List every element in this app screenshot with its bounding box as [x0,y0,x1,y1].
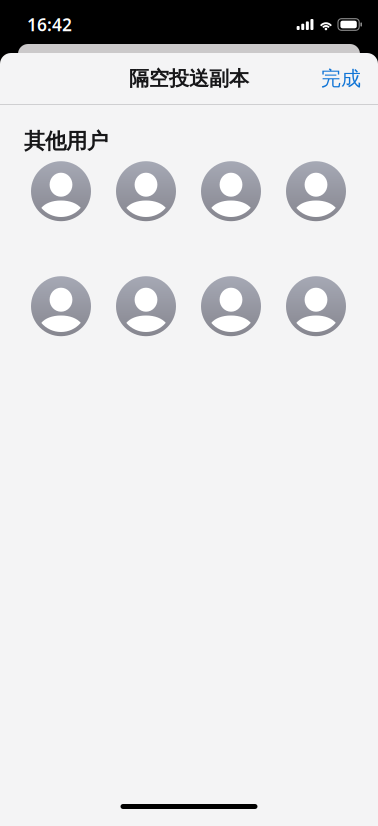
staticText: 隔空投送副本 [129,66,249,91]
button[interactable]: 完成 [304,52,378,105]
button[interactable]: 用户 [116,276,176,336]
button[interactable]: 用户 [116,161,176,221]
button[interactable]: 用户 [31,276,91,336]
staticText: 16:42 [27,13,72,36]
button[interactable]: 用户 [286,276,346,336]
staticText: 其他用户 [24,128,108,154]
staticText: 完成 [321,66,361,91]
button[interactable]: 用户 [31,161,91,221]
button[interactable]: 用户 [201,276,261,336]
button[interactable]: 用户 [286,161,346,221]
button[interactable]: 用户 [201,161,261,221]
